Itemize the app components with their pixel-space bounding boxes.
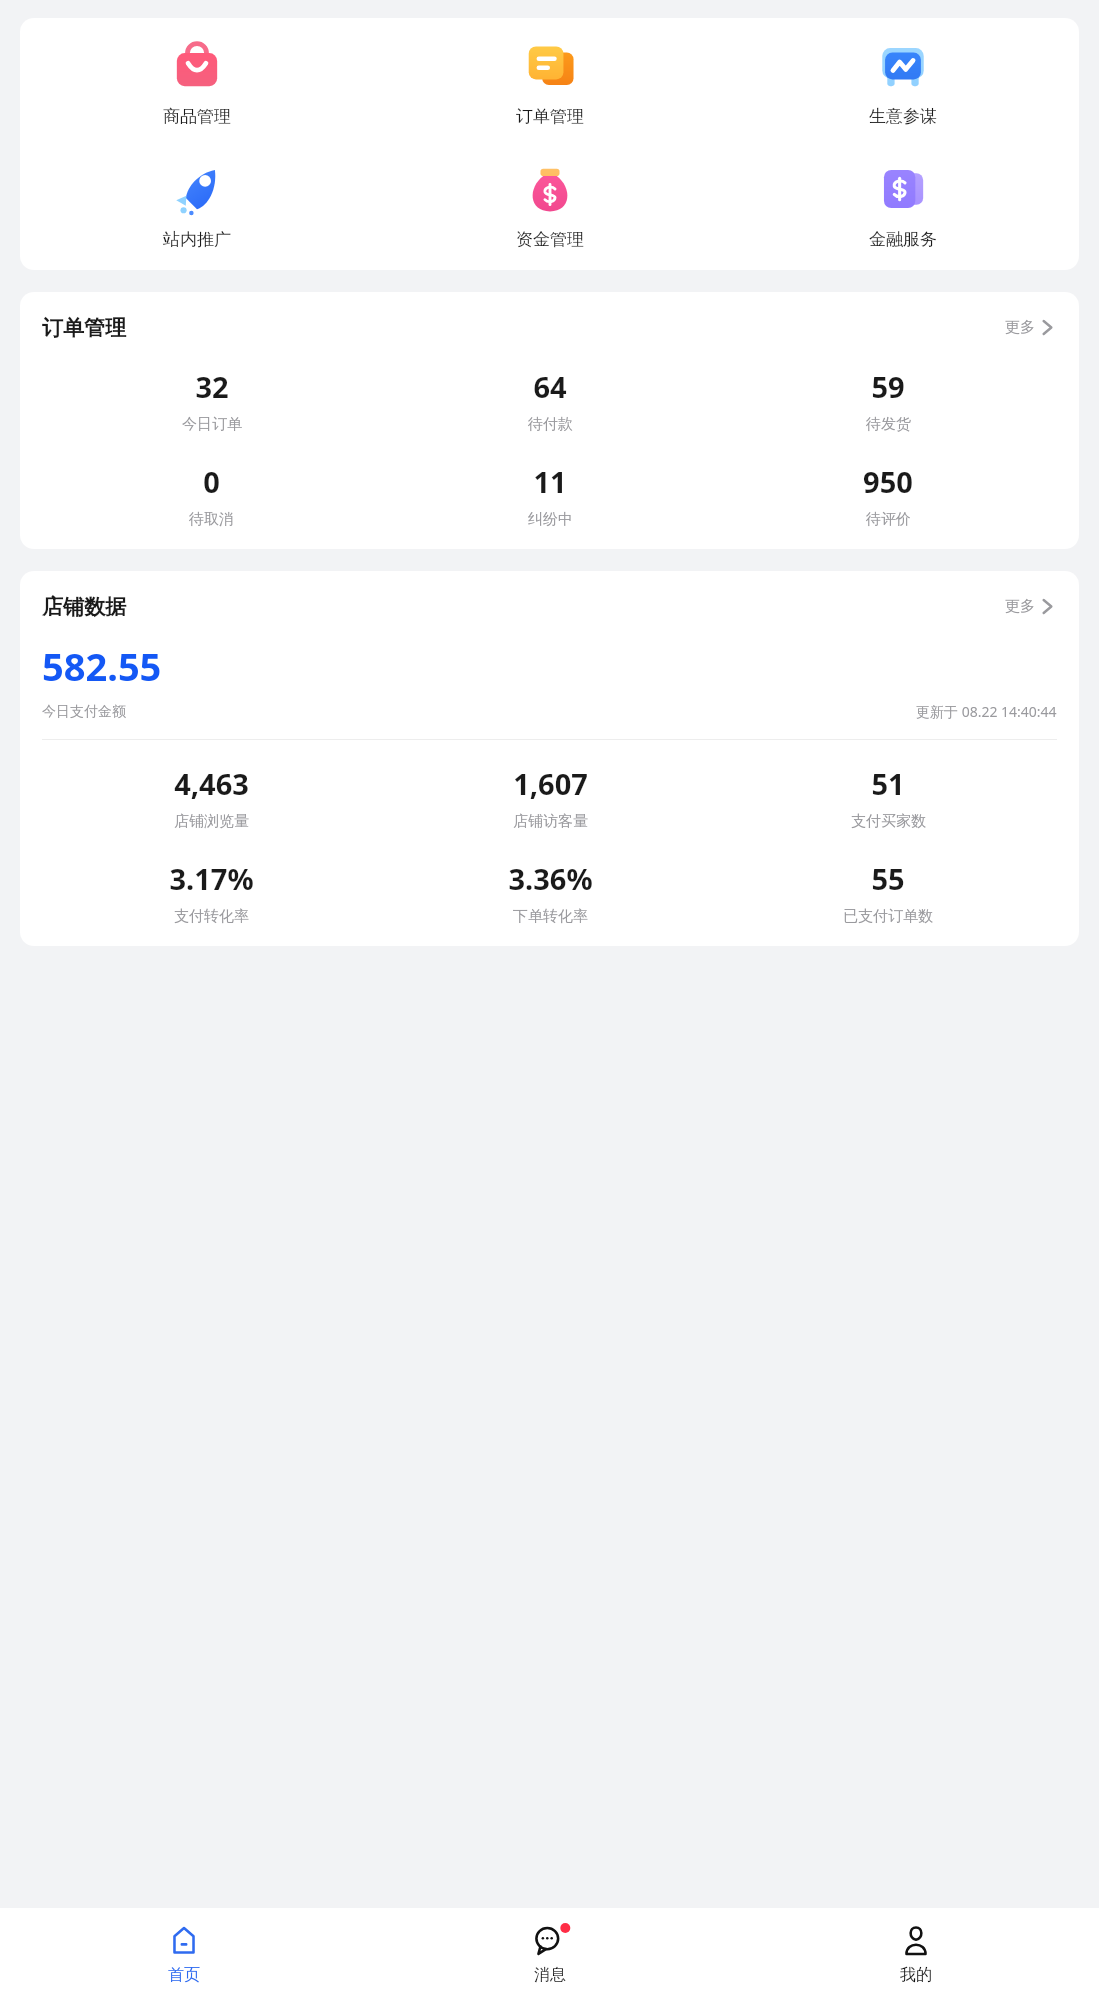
staticText: 51 bbox=[871, 764, 905, 803]
button[interactable]: 我的 bbox=[733, 1908, 1099, 2000]
staticText: 店铺浏览量 bbox=[174, 812, 249, 831]
staticText: 0 bbox=[203, 462, 220, 501]
staticText: 消息 bbox=[534, 1965, 566, 1985]
button[interactable]: 首页 bbox=[0, 1908, 367, 2000]
staticText: 待取消 bbox=[189, 510, 234, 529]
button[interactable]: 1,607 bbox=[381, 764, 719, 831]
staticText: 待付款 bbox=[528, 415, 573, 434]
button[interactable]: 11 bbox=[381, 462, 719, 529]
staticText: 3.36% bbox=[508, 859, 593, 898]
staticText: 下单转化率 bbox=[513, 907, 588, 926]
staticText: 今日订单 bbox=[182, 415, 242, 434]
staticText: 已支付订单数 bbox=[843, 907, 933, 926]
staticText: 资金管理 bbox=[516, 229, 584, 250]
staticText: 支付买家数 bbox=[851, 812, 926, 831]
button[interactable]: 3.17% bbox=[42, 859, 381, 926]
button[interactable]: 0 bbox=[42, 462, 381, 529]
staticText: 待发货 bbox=[866, 415, 911, 434]
staticText: 950 bbox=[863, 462, 913, 501]
staticText: 11 bbox=[533, 462, 567, 501]
staticText: 1,607 bbox=[513, 764, 588, 803]
button[interactable]: 更多 bbox=[1001, 314, 1057, 341]
staticText: 我的 bbox=[900, 1965, 932, 1985]
staticText: 今日支付金额 bbox=[42, 703, 126, 721]
staticText: 订单管理 bbox=[42, 315, 126, 341]
staticText: 店铺访客量 bbox=[513, 812, 588, 831]
staticText: 64 bbox=[533, 367, 567, 406]
staticText: 生意参谋 bbox=[869, 106, 937, 127]
staticText: 59 bbox=[871, 367, 905, 406]
staticText: 金融服务 bbox=[869, 229, 937, 250]
button[interactable]: 站内推广 bbox=[20, 155, 373, 256]
button[interactable]: 订单管理 bbox=[373, 32, 726, 133]
staticText: 更多 bbox=[1005, 318, 1035, 337]
button[interactable]: 64 bbox=[381, 367, 719, 434]
staticText: 55 bbox=[871, 859, 905, 898]
staticText: 站内推广 bbox=[163, 229, 231, 250]
button[interactable]: 32 bbox=[42, 367, 381, 434]
staticText: 首页 bbox=[168, 1965, 200, 1985]
staticText: 3.17% bbox=[169, 859, 254, 898]
staticText: 更新于 08.22 14:40:44 bbox=[916, 702, 1057, 721]
staticText: 582.55 bbox=[42, 640, 162, 692]
button[interactable]: 资金管理 bbox=[373, 155, 726, 256]
button[interactable]: 59 bbox=[719, 367, 1057, 434]
button[interactable]: 消息 bbox=[367, 1908, 733, 2000]
button[interactable]: 950 bbox=[719, 462, 1057, 529]
staticText: 纠纷中 bbox=[528, 510, 573, 529]
staticText: 更多 bbox=[1005, 597, 1035, 616]
button[interactable]: 商品管理 bbox=[20, 32, 373, 133]
button[interactable]: 生意参谋 bbox=[726, 32, 1079, 133]
button[interactable]: 3.36% bbox=[381, 859, 719, 926]
staticText: 支付转化率 bbox=[174, 907, 249, 926]
staticText: 待评价 bbox=[866, 510, 911, 529]
button[interactable]: 更多 bbox=[1001, 593, 1057, 620]
button[interactable]: 金融服务 bbox=[726, 155, 1079, 256]
staticText: 订单管理 bbox=[516, 106, 584, 127]
button[interactable]: 4,463 bbox=[42, 764, 381, 831]
staticText: 商品管理 bbox=[163, 106, 231, 127]
staticText: 店铺数据 bbox=[42, 594, 126, 620]
button[interactable]: 55 bbox=[719, 859, 1057, 926]
staticText: 4,463 bbox=[174, 764, 249, 803]
button[interactable]: 51 bbox=[719, 764, 1057, 831]
staticText: 32 bbox=[195, 367, 229, 406]
